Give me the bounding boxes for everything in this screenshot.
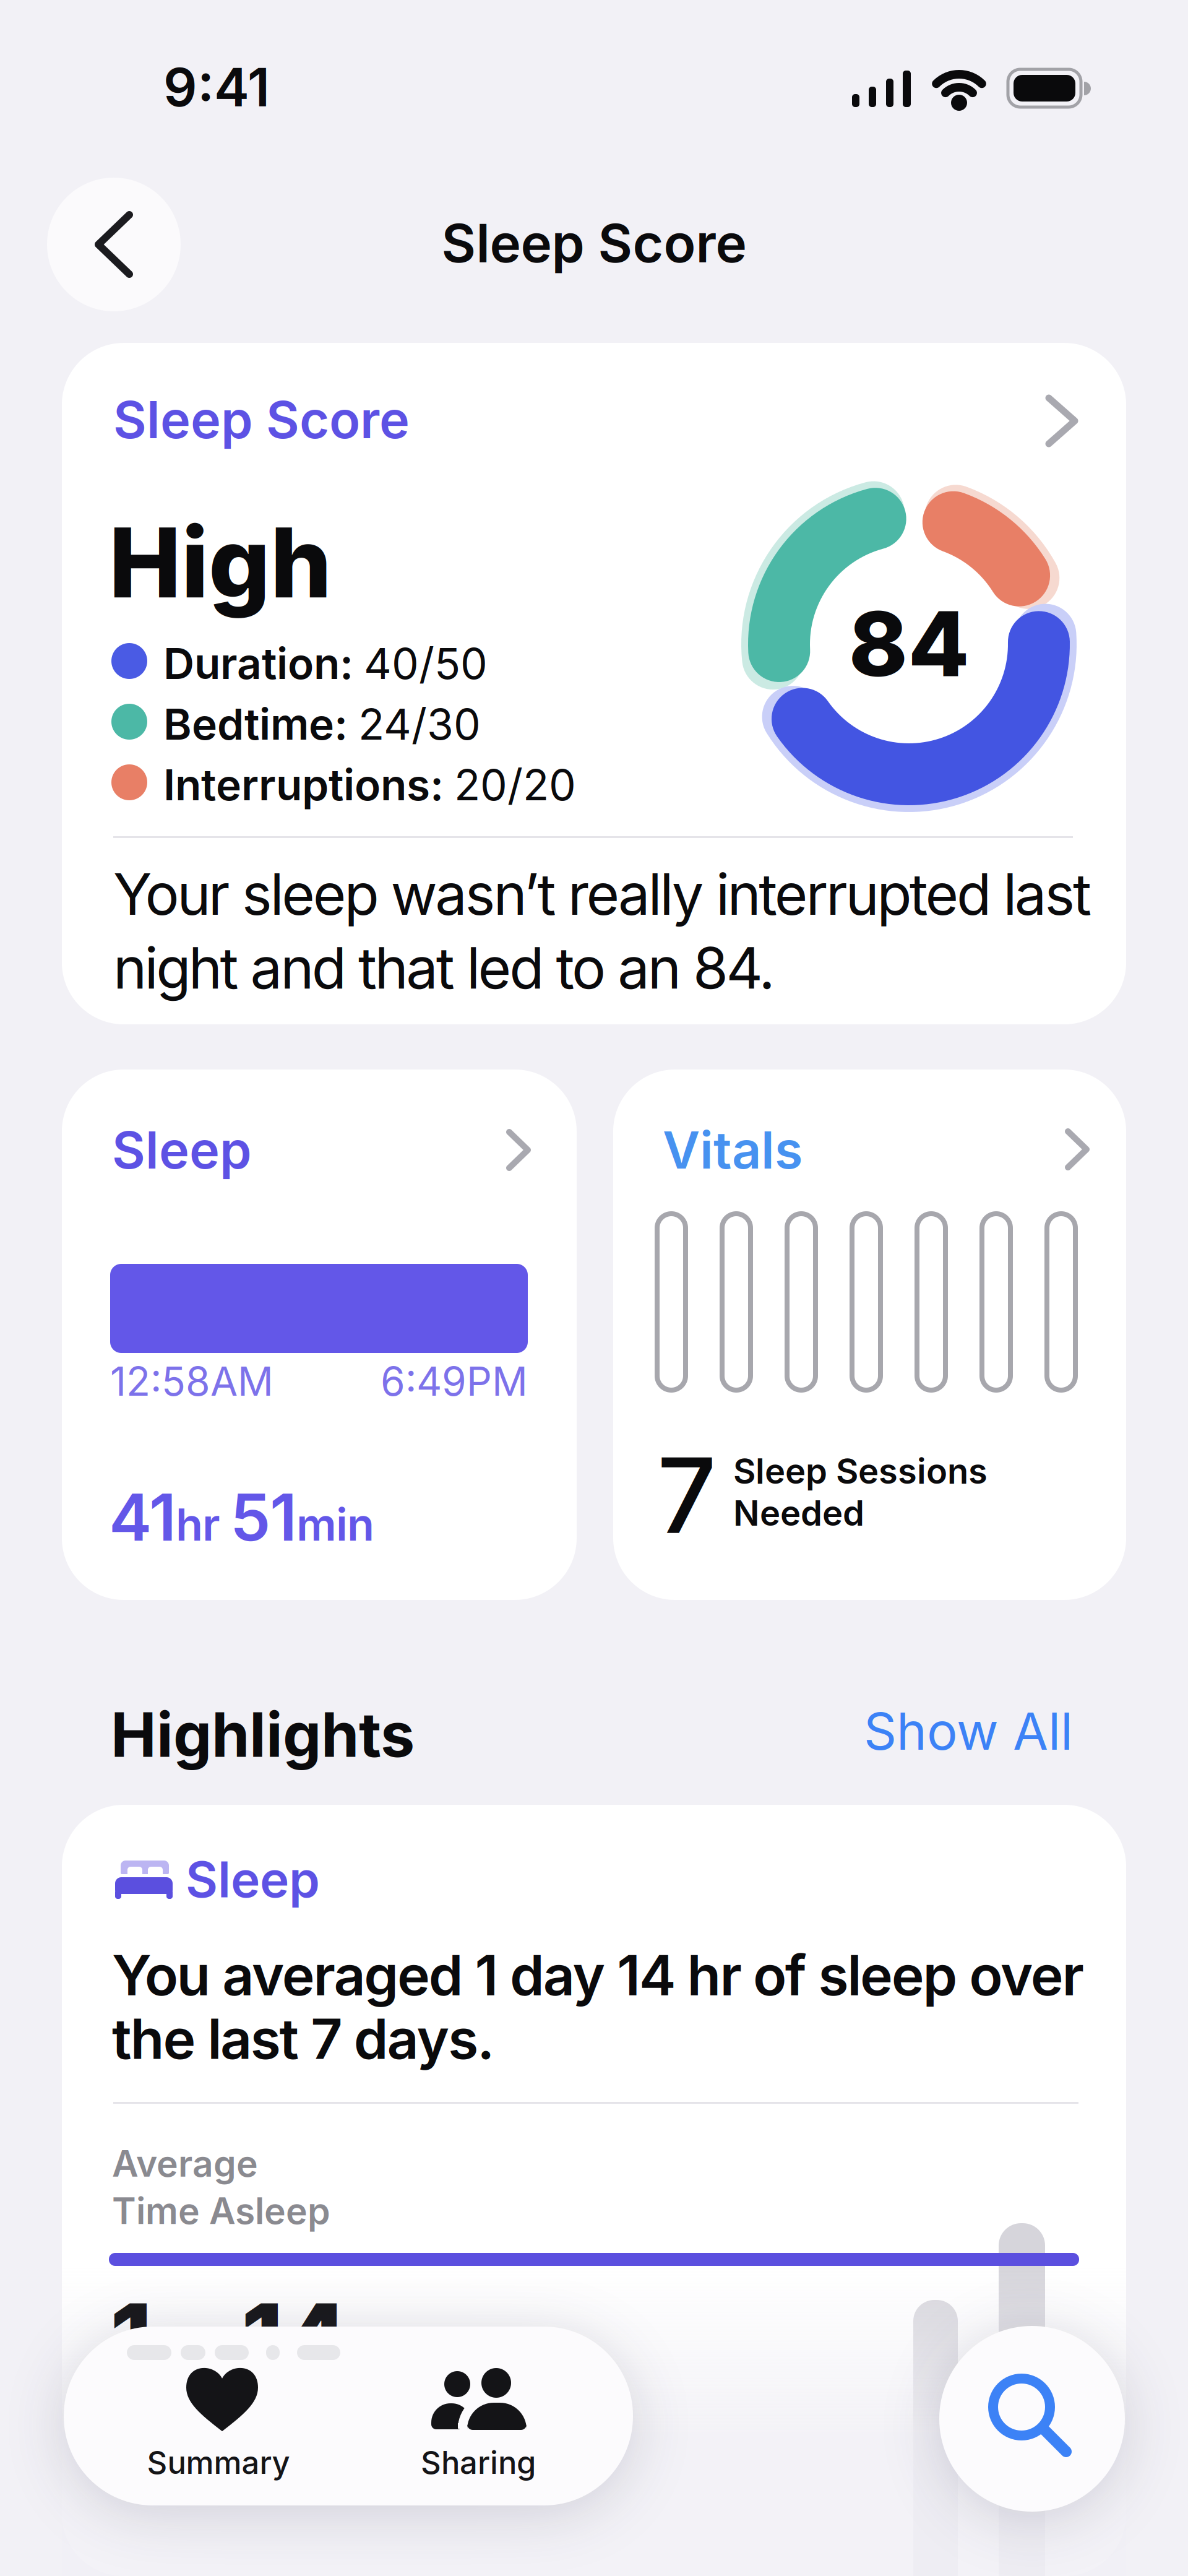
staticText: Average Time Asleep: [112, 2140, 330, 2235]
button[interactable]: Vitals: [613, 1070, 1126, 1600]
staticText: 84: [849, 590, 969, 698]
staticText: 41hr 51min: [109, 1479, 374, 1555]
staticText: 9:41: [163, 55, 270, 119]
button[interactable]: Sharing: [348, 2327, 608, 2505]
button[interactable]: Search: [939, 2326, 1125, 2512]
button[interactable]: Sleep: [62, 1070, 577, 1600]
staticText: Sleep Sessions Needed: [733, 1450, 988, 1534]
button[interactable]: Back: [47, 178, 181, 311]
button[interactable]: Sleep Score: [62, 343, 1126, 1024]
staticText: Summary: [147, 2444, 290, 2481]
staticText: Interruptions: 20/20: [163, 759, 576, 810]
staticText: High: [109, 504, 332, 621]
button[interactable]: Summary: [64, 2327, 373, 2505]
staticText: Sleep Score: [113, 389, 410, 451]
staticText: Vitals: [663, 1119, 803, 1181]
button[interactable]: Show All: [825, 1700, 1073, 1762]
staticText: Sleep: [186, 1849, 320, 1909]
staticText: 12:58AM: [110, 1357, 273, 1405]
staticText: Show All: [864, 1700, 1073, 1762]
staticText: Bedtime: 24/30: [163, 699, 481, 749]
staticText: Your sleep wasn’t really interrupted las…: [113, 857, 1091, 1005]
staticText: 6:49PM: [381, 1357, 528, 1405]
staticText: Sleep: [112, 1119, 252, 1181]
staticText: 7: [657, 1432, 717, 1558]
staticText: Duration: 40/50: [163, 638, 488, 689]
staticText: 1: [110, 2281, 152, 2396]
staticText: Sharing: [421, 2444, 536, 2481]
staticText: You averaged 1 day 14 hr of sleep over t…: [112, 1943, 1084, 2071]
staticText: 14: [241, 2281, 349, 2396]
staticText: Highlights: [111, 1698, 415, 1772]
staticText: Sleep Score: [441, 211, 747, 275]
